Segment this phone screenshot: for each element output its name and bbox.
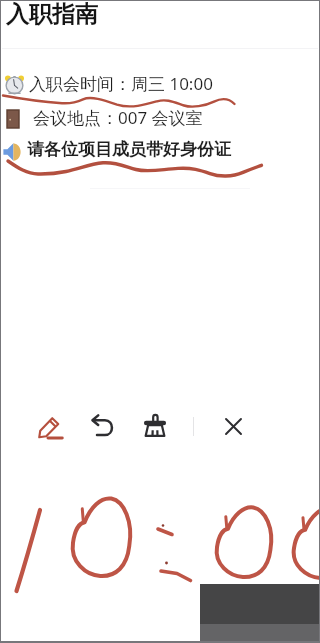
button[interactable]: Clear all xyxy=(135,405,175,445)
button[interactable]: Close xyxy=(213,406,253,446)
staticText: 入职指南 xyxy=(6,0,98,29)
staticText: 请各位项目成员带好身份证 xyxy=(27,139,231,160)
staticText: 会议地点：007 会议室 xyxy=(33,106,203,129)
button[interactable]: Undo xyxy=(83,405,123,445)
staticText: 入职会时间：周三 10:00 xyxy=(29,72,213,95)
button[interactable]: Pen xyxy=(30,406,70,446)
